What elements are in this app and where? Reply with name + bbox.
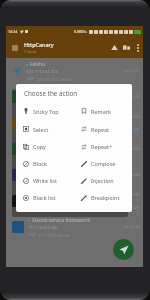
staticText: 111.13.213.245:443 bbox=[38, 233, 71, 238]
staticText: 14:20:18 bbox=[123, 94, 140, 100]
staticText: 223.111.101.226:443 bbox=[37, 77, 72, 82]
staticText: 14:24 bbox=[8, 29, 18, 34]
button[interactable]: Repeat+ bbox=[74, 138, 132, 155]
staticText: Black list bbox=[33, 194, 56, 201]
button[interactable]: Chrome bbox=[6, 84, 143, 110]
staticText: 200 OK bbox=[125, 205, 140, 211]
button[interactable]: Compose request bbox=[113, 239, 134, 260]
staticText: 111.13.213.245 bbox=[28, 225, 58, 231]
staticText: Chrome bbox=[32, 87, 50, 94]
staticText: 7 items bbox=[24, 49, 37, 54]
staticText: 0.8KB/s bbox=[74, 29, 87, 34]
staticText: 111.13.213.245:80 bbox=[38, 129, 69, 134]
staticText: Select bbox=[33, 126, 49, 133]
staticText: 142.250.71.14 bbox=[28, 95, 56, 101]
staticText: 200 OK bbox=[125, 127, 140, 133]
staticText: TCP bbox=[28, 232, 36, 238]
staticText: Compose bbox=[91, 160, 116, 167]
staticText: TCP bbox=[28, 128, 36, 134]
button[interactable]: Block bbox=[16, 155, 74, 172]
staticText: Xiaomi service framework bbox=[32, 113, 91, 120]
staticText: UDP bbox=[26, 76, 35, 82]
staticText: Block bbox=[33, 160, 47, 167]
staticText: Feishu bbox=[30, 61, 45, 68]
staticText: 120.92.101.82:443 bbox=[38, 181, 69, 186]
button[interactable]: White list bbox=[16, 172, 74, 189]
staticText: 14:21:45 bbox=[123, 68, 140, 74]
button[interactable]: Sticky Top bbox=[16, 102, 74, 120]
staticText: Choose the action bbox=[24, 89, 78, 98]
staticText: 14:20:02 bbox=[123, 114, 140, 120]
button[interactable]: Xiaomi service framework bbox=[6, 214, 143, 240]
button[interactable]: Injection bbox=[74, 172, 132, 189]
staticText: Repeat+ bbox=[91, 143, 113, 150]
staticText: 111.13.213.245 bbox=[28, 121, 58, 127]
staticText: Copy bbox=[33, 143, 46, 150]
button[interactable]: Copy bbox=[16, 138, 74, 155]
button[interactable]: Remark bbox=[74, 102, 132, 120]
staticText: Xiaomi service framework bbox=[32, 217, 91, 224]
staticText: TCP bbox=[28, 180, 36, 186]
staticText: 14:19:35 bbox=[123, 192, 140, 198]
button[interactable]: Select bbox=[16, 120, 74, 138]
staticText: Repeat bbox=[91, 126, 110, 133]
staticText: Remark bbox=[91, 108, 111, 115]
staticText: WeChat bbox=[32, 139, 50, 146]
staticText: Breakpoint bbox=[91, 194, 120, 201]
button[interactable]: Breakpoint bbox=[74, 189, 132, 206]
staticText: Settings bbox=[32, 165, 51, 172]
button[interactable]: Warning bbox=[108, 37, 120, 58]
staticText: 14:19:30 bbox=[123, 224, 140, 230]
staticText: 223.111.101.226 bbox=[26, 69, 59, 75]
button[interactable]: WeChat bbox=[6, 136, 143, 162]
button[interactable]: Feishu bbox=[6, 58, 143, 84]
staticText: MIUI System bbox=[32, 191, 61, 198]
button[interactable]: More options bbox=[132, 37, 143, 58]
button[interactable]: MIUI System bbox=[6, 188, 143, 214]
staticText: 14:19:40 bbox=[123, 172, 140, 178]
button[interactable]: Settings bbox=[6, 162, 143, 188]
staticText: White list bbox=[33, 177, 57, 184]
staticText: 101.89.40.123 bbox=[28, 147, 56, 153]
staticText: HttpCanary bbox=[24, 41, 54, 48]
staticText: 14:19:55 bbox=[123, 146, 140, 152]
button[interactable]: Compose bbox=[74, 155, 132, 172]
staticText: Sticky Top bbox=[33, 108, 59, 115]
button[interactable]: Navigation menu bbox=[6, 37, 24, 58]
button[interactable]: Xiaomi service framework bbox=[6, 110, 143, 136]
staticText: Injection bbox=[91, 177, 114, 184]
button[interactable]: Black list bbox=[16, 189, 74, 206]
button[interactable]: Filter bbox=[120, 37, 132, 58]
button[interactable]: Repeat bbox=[74, 120, 132, 138]
staticText: 110.43.68.212 bbox=[28, 199, 56, 205]
